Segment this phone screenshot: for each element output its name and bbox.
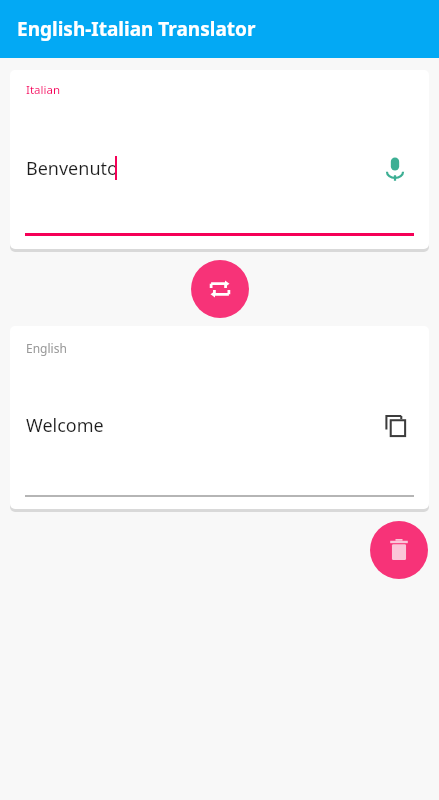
staticText: Benvenuto [26,156,118,181]
staticText: Welcome [26,413,104,438]
button[interactable]: Swap languages [191,260,249,318]
staticText: English-Italian Translator [17,16,256,42]
button[interactable]: Voice input [374,148,416,190]
button[interactable]: Clear text [370,521,428,579]
button[interactable]: Copy translation [376,406,416,446]
staticText: Italian [26,82,60,98]
staticText: English [26,340,67,356]
